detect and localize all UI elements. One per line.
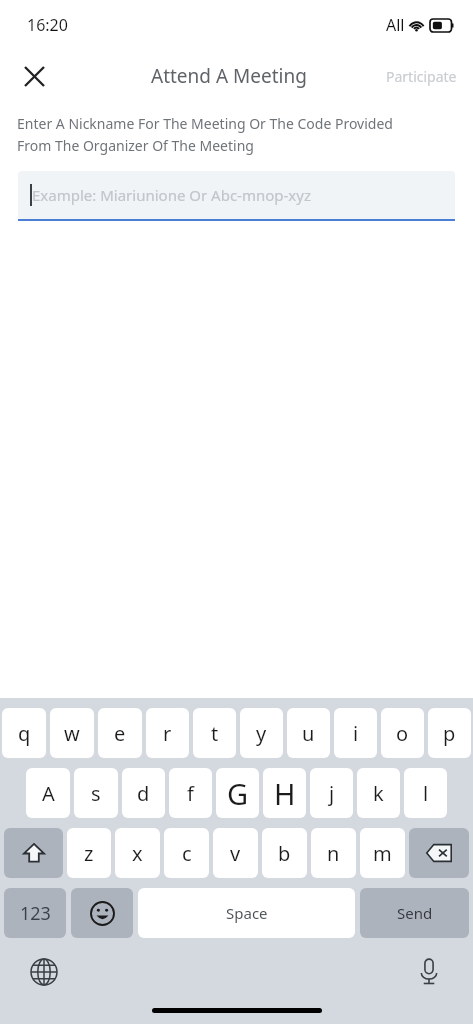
button[interactable]: q (2, 708, 46, 758)
button[interactable]: c (164, 828, 209, 878)
staticText: u (302, 720, 315, 747)
button[interactable]: b (262, 828, 307, 878)
button[interactable]: u (287, 708, 330, 758)
button[interactable]: x (115, 828, 160, 878)
button[interactable]: Change language (22, 950, 66, 994)
staticText: H (274, 774, 296, 813)
staticText: d (137, 780, 150, 807)
staticText: c (182, 840, 192, 867)
button[interactable]: Send (360, 888, 469, 938)
staticText: A (42, 780, 55, 807)
staticText: All (386, 14, 405, 36)
button[interactable]: Space (138, 888, 355, 938)
staticText: Attend A Meeting (151, 63, 307, 89)
button[interactable]: k (357, 768, 400, 818)
staticText: Send (397, 903, 433, 923)
staticText: k (373, 780, 384, 807)
staticText: l (423, 780, 429, 807)
button[interactable]: Close (14, 56, 54, 96)
button[interactable]: Voice input (407, 950, 451, 994)
staticText: Space (226, 903, 268, 923)
button[interactable]: i (334, 708, 377, 758)
button[interactable]: A (26, 768, 70, 818)
button[interactable]: o (381, 708, 424, 758)
button[interactable]: Backspace (409, 828, 469, 878)
staticText: Example: Miariunione Or Abc-mnop-xyz (32, 185, 311, 205)
button[interactable]: Shift (4, 828, 63, 878)
button[interactable]: e (98, 708, 142, 758)
staticText: v (230, 840, 241, 867)
staticText: i (353, 720, 359, 747)
button[interactable]: Emoji (71, 888, 133, 938)
staticText: z (84, 840, 94, 867)
staticText: p (443, 720, 456, 747)
staticText: s (91, 780, 101, 807)
button[interactable]: w (50, 708, 94, 758)
button[interactable]: y (240, 708, 283, 758)
button[interactable]: n (311, 828, 356, 878)
button[interactable]: l (404, 768, 447, 818)
button[interactable]: m (360, 828, 405, 878)
button[interactable]: Participate (376, 59, 467, 94)
staticText: t (211, 720, 219, 747)
staticText: j (329, 780, 335, 807)
staticText: n (327, 840, 340, 867)
staticText: o (396, 720, 409, 747)
staticText: q (18, 720, 31, 747)
button[interactable]: H (263, 768, 306, 818)
button[interactable]: d (122, 768, 165, 818)
staticText: m (373, 840, 392, 867)
staticText: 16:20 (27, 14, 68, 36)
staticText: 123 (20, 901, 51, 926)
button[interactable]: v (213, 828, 258, 878)
staticText: w (64, 720, 80, 747)
staticText: Participate (386, 67, 457, 86)
button[interactable]: t (193, 708, 236, 758)
staticText: Enter A Nickname For The Meeting Or The … (17, 114, 393, 155)
staticText: f (187, 780, 194, 807)
button[interactable]: 123 (4, 888, 66, 938)
staticText: x (132, 840, 143, 867)
staticText: y (256, 720, 267, 747)
button[interactable]: f (169, 768, 212, 818)
staticText: G (227, 774, 249, 813)
button[interactable]: p (428, 708, 471, 758)
staticText: r (163, 720, 172, 747)
button[interactable]: j (310, 768, 353, 818)
staticText: e (114, 720, 126, 747)
button[interactable]: G (216, 768, 259, 818)
button[interactable]: Example: Miariunione Or Abc-mnop-xyz (18, 171, 455, 221)
staticText: b (278, 840, 291, 867)
button[interactable]: s (74, 768, 118, 818)
button[interactable]: r (146, 708, 189, 758)
button[interactable]: z (67, 828, 111, 878)
